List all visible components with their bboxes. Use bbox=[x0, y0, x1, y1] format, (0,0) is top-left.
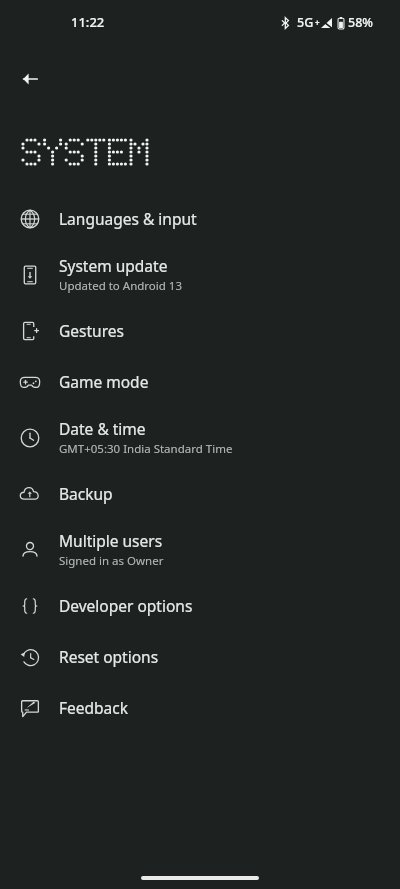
staticText: Date & time bbox=[59, 418, 146, 439]
staticText: + bbox=[315, 17, 320, 28]
staticText: GMT+05:30 India Standard Time bbox=[59, 441, 233, 457]
staticText: System update bbox=[59, 255, 168, 276]
staticText: Gestures bbox=[59, 320, 124, 341]
button[interactable]: Multiple users bbox=[0, 519, 400, 580]
button[interactable]: Back bbox=[9, 58, 51, 100]
button[interactable]: Date & time bbox=[0, 407, 400, 468]
button[interactable]: Languages & input bbox=[0, 193, 400, 244]
staticText: Game mode bbox=[59, 371, 149, 392]
button[interactable]: Feedback bbox=[0, 682, 400, 733]
staticText: Developer options bbox=[59, 595, 193, 616]
button[interactable]: System update bbox=[0, 244, 400, 305]
staticText: 11:22 bbox=[71, 13, 105, 31]
staticText: Languages & input bbox=[59, 208, 197, 229]
staticText: Multiple users bbox=[59, 530, 163, 551]
staticText: 58% bbox=[348, 14, 373, 31]
button[interactable]: Backup bbox=[0, 468, 400, 519]
staticText: Feedback bbox=[59, 697, 129, 718]
staticText: Updated to Android 13 bbox=[59, 278, 182, 294]
staticText: Backup bbox=[59, 483, 113, 504]
button[interactable]: Game mode bbox=[0, 356, 400, 407]
staticText: 5G bbox=[297, 14, 314, 31]
staticText: Signed in as Owner bbox=[59, 553, 164, 569]
button[interactable]: Reset options bbox=[0, 631, 400, 682]
button[interactable]: Developer options bbox=[0, 580, 400, 631]
button[interactable]: Gestures bbox=[0, 305, 400, 356]
staticText: Reset options bbox=[59, 646, 159, 667]
